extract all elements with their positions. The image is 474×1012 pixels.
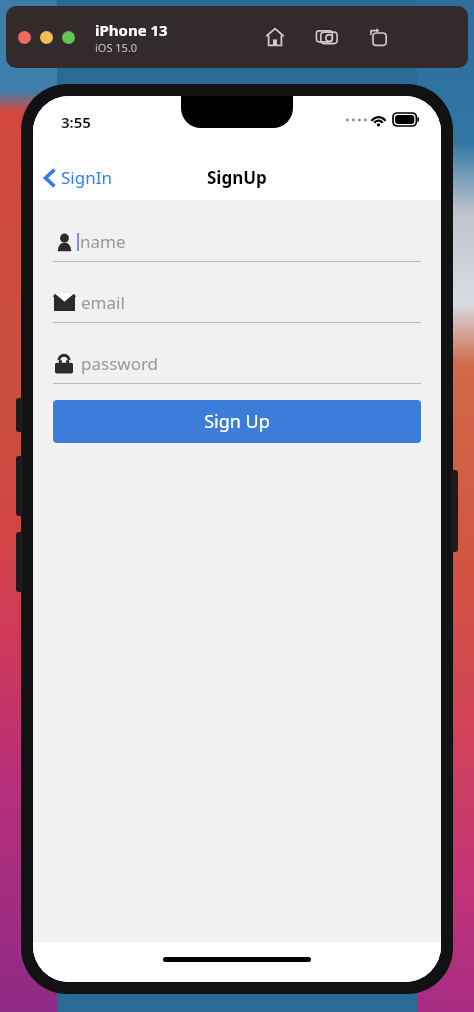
staticText: SignIn <box>61 166 112 189</box>
button[interactable] <box>18 31 31 44</box>
button[interactable] <box>40 31 53 44</box>
staticText: Sign Up <box>204 409 270 434</box>
staticText: iPhone 13 <box>95 20 168 40</box>
button[interactable]: Sign Up <box>53 400 421 443</box>
button[interactable]: Rotate <box>362 20 396 54</box>
button[interactable] <box>62 31 75 44</box>
button[interactable]: Home <box>258 20 292 54</box>
button[interactable]: SignIn <box>43 166 112 189</box>
staticText: name <box>80 230 126 253</box>
staticText: 3:55 <box>61 112 91 132</box>
button[interactable]: email <box>53 291 421 323</box>
staticText: email <box>81 291 125 314</box>
button[interactable]: password <box>53 352 421 384</box>
staticText: password <box>81 352 159 375</box>
staticText: SignUp <box>207 166 267 189</box>
staticText: iOS 15.0 <box>95 40 138 55</box>
button[interactable]: Screenshot <box>310 20 344 54</box>
button[interactable]: name <box>53 230 421 262</box>
